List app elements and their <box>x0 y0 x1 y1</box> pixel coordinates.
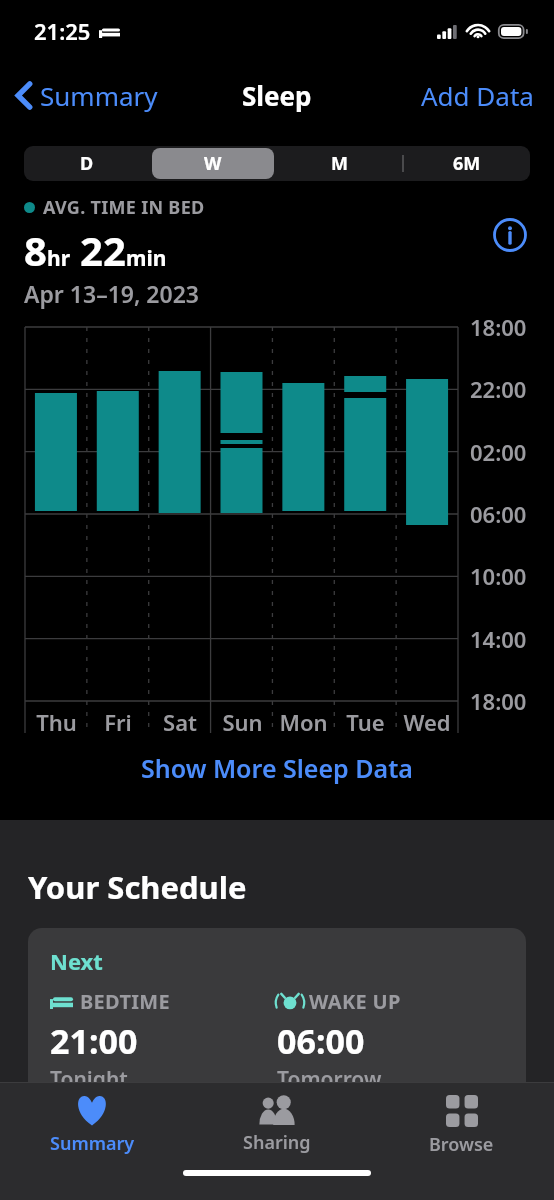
staticText: 21:25 <box>34 16 91 46</box>
staticText: 18:00 <box>470 686 527 716</box>
staticText: Sat <box>163 707 197 737</box>
staticText: Summary <box>50 1131 135 1156</box>
staticText: BEDTIME <box>80 988 171 1015</box>
staticText: Add Data <box>421 78 534 113</box>
staticText: 06:00 <box>470 499 527 529</box>
button[interactable]: Show More Sleep Data <box>0 743 554 793</box>
button[interactable]: Next <box>28 928 526 1129</box>
staticText: W <box>204 151 222 176</box>
staticText: 06:00 <box>277 1018 365 1064</box>
staticText: Browse <box>429 1132 494 1157</box>
staticText: Mon <box>279 707 328 737</box>
staticText: 18:00 <box>470 312 527 342</box>
button[interactable]: D <box>26 148 148 179</box>
staticText: Tomorrow <box>277 1065 382 1094</box>
staticText: Wed <box>403 707 451 737</box>
button[interactable]: 6M <box>405 148 528 179</box>
button[interactable]: Sharing <box>184 1083 369 1163</box>
staticText: 22 <box>80 223 126 277</box>
staticText: Thu <box>36 707 77 737</box>
staticText: Fri <box>104 707 132 737</box>
staticText: Show More Sleep Data <box>141 751 413 785</box>
staticText: Apr 13–19, 2023 <box>24 278 199 309</box>
staticText: Tonight <box>50 1065 128 1094</box>
button[interactable]: Summary <box>10 70 164 121</box>
button[interactable]: Information about time in bed <box>490 215 530 255</box>
staticText: Tue <box>346 707 385 737</box>
staticText: 22:00 <box>470 374 527 404</box>
staticText: WAKE UP <box>309 988 401 1015</box>
button[interactable]: Summary <box>0 1083 184 1163</box>
staticText: Sun <box>222 707 263 737</box>
staticText: 10:00 <box>470 561 527 591</box>
button[interactable]: Browse <box>369 1083 554 1163</box>
button[interactable]: M <box>278 148 401 179</box>
staticText: 02:00 <box>470 437 527 467</box>
staticText: AVG. TIME IN BED <box>43 195 205 220</box>
staticText: Your Schedule <box>28 866 247 908</box>
staticText: hr <box>47 244 71 273</box>
staticText: Sleep <box>242 78 312 113</box>
staticText: M <box>331 151 348 176</box>
staticText: Sharing <box>243 1130 311 1155</box>
staticText: 8 <box>24 223 47 277</box>
staticText: 6M <box>453 151 481 176</box>
button[interactable]: Add Data <box>417 70 538 121</box>
staticText: 14:00 <box>470 624 527 654</box>
staticText: 21:00 <box>50 1018 138 1064</box>
staticText: Next <box>50 946 103 976</box>
staticText: D <box>80 151 94 176</box>
staticText: min <box>126 244 167 273</box>
staticText: Summary <box>40 78 158 113</box>
button[interactable]: W <box>152 148 274 179</box>
